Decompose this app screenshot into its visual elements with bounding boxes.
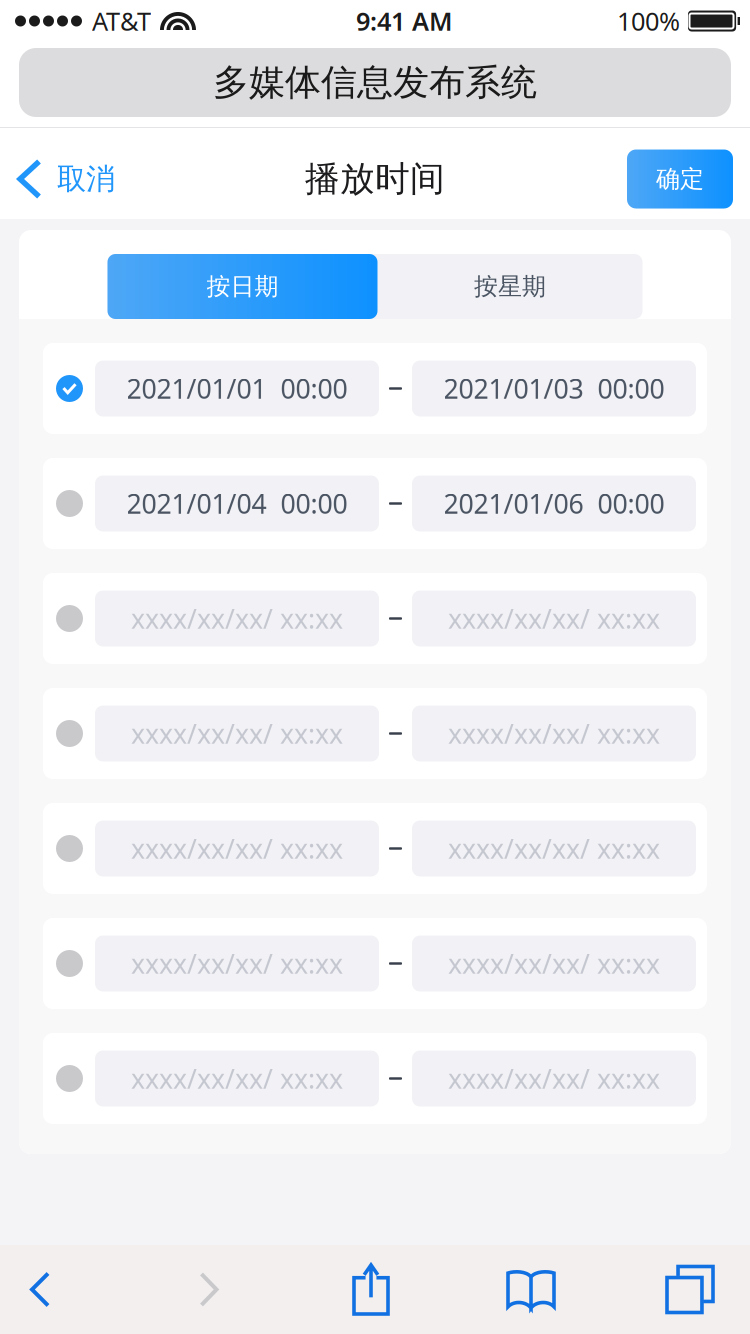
button[interactable]: Forward — [169, 1245, 249, 1334]
button[interactable]: 取消 — [0, 148, 131, 210]
staticText: xxxx/xx/xx/ xx:xx — [448, 1061, 660, 1096]
staticText: xxxx/xx/xx/ xx:xx — [448, 831, 660, 866]
staticText: xxxx/xx/xx/ xx:xx — [448, 716, 660, 751]
staticText: 2021/01/01 00:00 — [126, 371, 347, 406]
staticText: 2021/01/03 00:00 — [443, 371, 664, 406]
button[interactable]: Bookmarks — [491, 1245, 571, 1334]
staticText: 按日期 — [206, 272, 278, 301]
button[interactable]: 多媒体信息发布系统 — [19, 48, 731, 117]
staticText: 100% — [617, 4, 680, 38]
staticText: 按星期 — [474, 272, 546, 301]
button[interactable]: 2021/01/01 00:00 — [43, 343, 707, 434]
staticText: 多媒体信息发布系统 — [213, 60, 537, 105]
button[interactable]: 2021/01/04 00:00 — [43, 458, 707, 549]
staticText: 确定 — [656, 164, 704, 194]
button[interactable]: 按日期 — [107, 254, 377, 319]
staticText: xxxx/xx/xx/ xx:xx — [131, 1061, 343, 1096]
button[interactable]: Tabs — [650, 1245, 730, 1334]
staticText: xxxx/xx/xx/ xx:xx — [131, 946, 343, 981]
staticText: 取消 — [57, 161, 115, 197]
staticText: xxxx/xx/xx/ xx:xx — [131, 716, 343, 751]
button[interactable]: xxxx/xx/xx/ xx:xx — [43, 918, 707, 1009]
button[interactable]: xxxx/xx/xx/ xx:xx — [43, 688, 707, 779]
staticText: 9:41 AM — [356, 4, 453, 38]
staticText: xxxx/xx/xx/ xx:xx — [448, 946, 660, 981]
button[interactable]: 确定 — [627, 149, 733, 208]
button[interactable]: xxxx/xx/xx/ xx:xx — [43, 1033, 707, 1124]
staticText: 2021/01/04 00:00 — [126, 486, 347, 521]
button[interactable]: Share — [331, 1245, 411, 1334]
staticText: 播放时间 — [305, 158, 445, 200]
button[interactable]: xxxx/xx/xx/ xx:xx — [43, 573, 707, 664]
button[interactable]: Back — [0, 1245, 80, 1334]
button[interactable]: 按星期 — [377, 254, 642, 319]
staticText: AT&T — [92, 4, 151, 38]
staticText: xxxx/xx/xx/ xx:xx — [448, 601, 660, 636]
staticText: 2021/01/06 00:00 — [443, 486, 664, 521]
staticText: xxxx/xx/xx/ xx:xx — [131, 601, 343, 636]
staticText: xxxx/xx/xx/ xx:xx — [131, 831, 343, 866]
button[interactable]: xxxx/xx/xx/ xx:xx — [43, 803, 707, 894]
